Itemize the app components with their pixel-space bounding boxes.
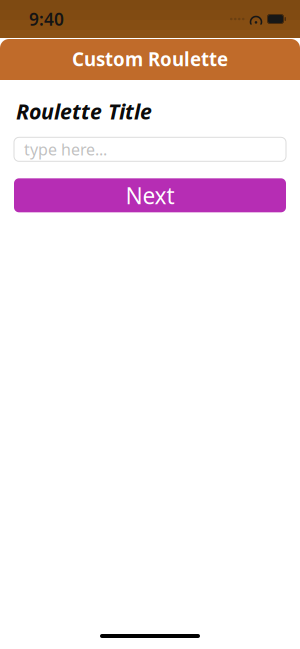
staticText: Next bbox=[125, 180, 174, 210]
staticText: type here... bbox=[24, 139, 107, 160]
staticText: Custom Roulette bbox=[72, 47, 228, 71]
staticText: Roulette Title bbox=[16, 97, 152, 125]
button[interactable]: Next bbox=[14, 178, 286, 212]
staticText: 9:40 bbox=[29, 7, 64, 30]
